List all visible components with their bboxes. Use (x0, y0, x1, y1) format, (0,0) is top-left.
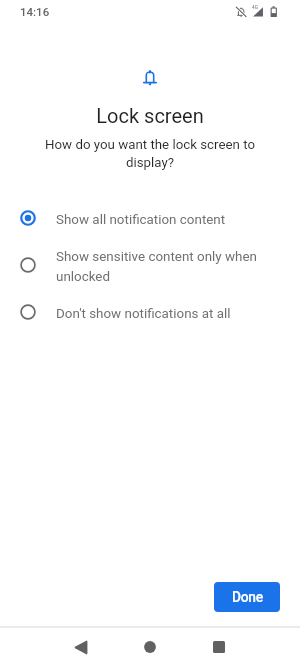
button[interactable]: Don't show notifications at all (0, 293, 300, 330)
staticText: 4G (252, 5, 258, 11)
staticText: How do you want the lock screen to displ… (22, 135, 278, 171)
button[interactable]: Show sensitive content only when unlocke… (0, 236, 300, 293)
staticText: 14:16 (20, 5, 50, 18)
staticText: Don't show notifications at all (56, 302, 231, 322)
button[interactable]: Recent apps (198, 627, 239, 666)
staticText: Lock screen (0, 104, 300, 127)
staticText: Done (232, 589, 263, 605)
button[interactable]: Home (129, 627, 170, 666)
staticText: Show sensitive content only when unlocke… (56, 245, 270, 285)
button[interactable]: Back (60, 628, 101, 667)
staticText: Show all notification content (56, 208, 226, 228)
button[interactable]: Show all notification content (0, 199, 300, 236)
button[interactable]: Done (214, 582, 280, 612)
